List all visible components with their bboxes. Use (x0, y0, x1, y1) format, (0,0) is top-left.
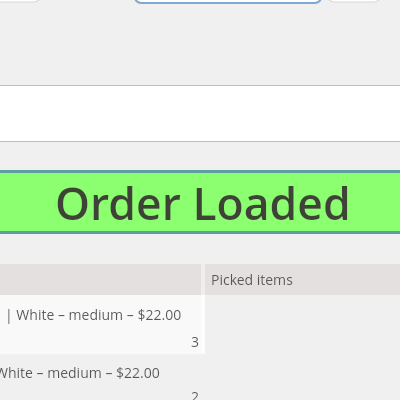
staticText: 3 (191, 332, 200, 351)
staticText: 2 (191, 387, 200, 400)
staticText: White – medium – $22.00 (0, 363, 160, 382)
button[interactable]: | White – medium – $22.00 (0, 295, 205, 354)
button[interactable]: Active browser tab (135, 0, 321, 3)
staticText: Picked items (211, 270, 293, 289)
button[interactable]: Browser tab (0, 0, 41, 2)
button[interactable]: White – medium – $22.00 (0, 354, 205, 400)
button[interactable]: Browser tab (327, 0, 381, 2)
staticText: Order Loaded (55, 172, 351, 230)
button[interactable]: Order Loaded (0, 173, 400, 231)
staticText: | White – medium – $22.00 (5, 305, 182, 324)
